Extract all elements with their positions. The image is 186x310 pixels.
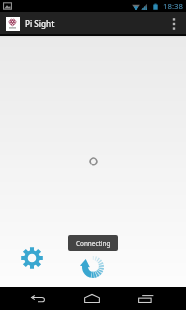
staticText: 18:38 — [163, 1, 183, 12]
button[interactable]: More options — [165, 12, 183, 35]
button[interactable]: Back — [18, 287, 58, 310]
button[interactable]: Recents — [126, 287, 166, 310]
button[interactable]: Home — [72, 287, 112, 310]
button[interactable]: Refresh — [82, 256, 104, 278]
staticText: Pi Sight — [25, 18, 55, 29]
button[interactable]: Settings — [21, 247, 43, 269]
staticText: Connecting — [76, 239, 111, 248]
